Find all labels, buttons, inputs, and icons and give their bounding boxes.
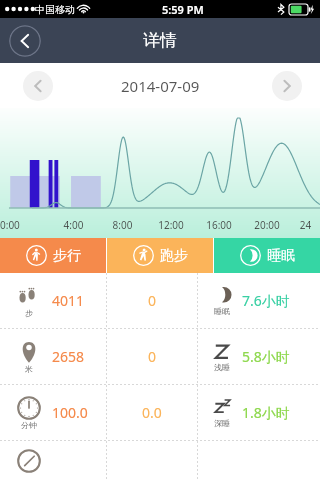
button[interactable]: 步行 <box>0 238 106 273</box>
staticText: 12:00 <box>147 218 195 232</box>
staticText: 4011 <box>52 291 85 310</box>
staticText: 睡眠 <box>214 306 230 316</box>
staticText: 20:00 <box>243 218 291 232</box>
staticText: 2658 <box>52 347 85 366</box>
staticText: 1.8小时 <box>242 403 290 422</box>
staticText: 2014-07-09 <box>121 76 200 96</box>
staticText: 0:00 <box>0 218 49 232</box>
staticText: 8:00 <box>98 218 147 232</box>
button[interactable]: 睡眠 <box>214 238 320 273</box>
staticText: 跑步 <box>160 247 188 265</box>
staticText: 100.0 <box>52 403 88 422</box>
staticText: 睡眠 <box>267 247 295 265</box>
staticText: 步行 <box>53 247 81 265</box>
staticText: 7.6小时 <box>242 291 290 310</box>
staticText: 0.0 <box>142 403 162 422</box>
staticText: 0 <box>148 347 157 366</box>
staticText: 24 <box>291 218 320 232</box>
staticText: 步 <box>25 308 33 318</box>
staticText: 5:59 PM <box>162 2 204 17</box>
staticText: 米 <box>25 364 33 374</box>
staticText: 详情 <box>143 30 177 51</box>
staticText: 分钟 <box>21 420 37 430</box>
staticText: 0 <box>148 291 157 310</box>
staticText: 深睡 <box>214 418 230 428</box>
button[interactable]: 分钟 <box>0 385 320 440</box>
button[interactable]: Back <box>9 25 41 57</box>
button[interactable]: Next day <box>272 71 302 101</box>
button[interactable]: Previous day <box>23 71 53 101</box>
button[interactable]: 跑步 <box>107 238 213 273</box>
staticText: 中国移动 <box>35 3 75 16</box>
staticText: 4:00 <box>49 218 98 232</box>
staticText: 5.8小时 <box>242 347 290 366</box>
staticText: 16:00 <box>195 218 243 232</box>
button[interactable] <box>0 441 320 480</box>
staticText: 浅睡 <box>214 362 230 372</box>
button[interactable]: 米 <box>0 329 320 384</box>
button[interactable]: 步 <box>0 273 320 328</box>
